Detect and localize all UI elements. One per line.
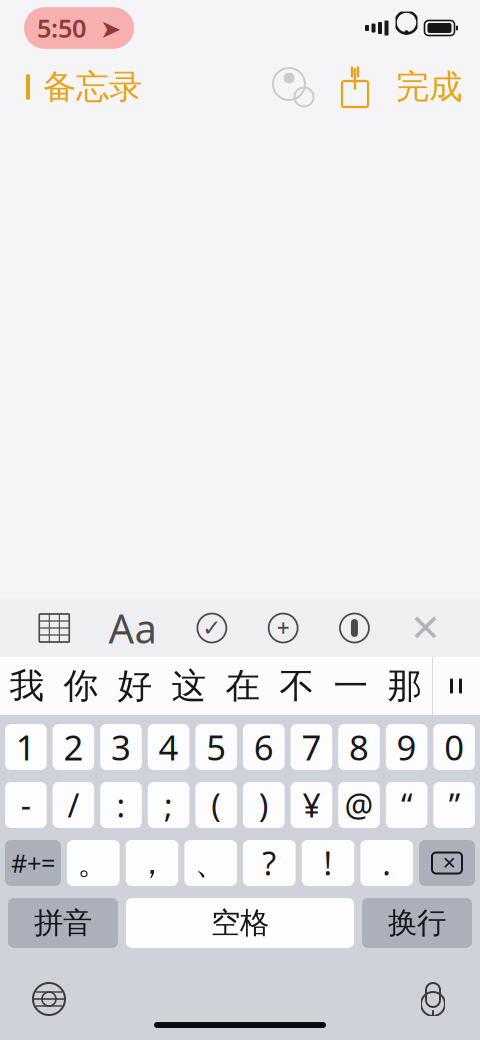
button[interactable]: 清单 bbox=[196, 612, 228, 644]
button[interactable]: 6 bbox=[243, 724, 285, 770]
staticText: 空格 bbox=[211, 905, 269, 941]
button[interactable]: “ bbox=[386, 782, 427, 828]
staticText: 拼音 bbox=[34, 905, 92, 941]
button[interactable]: . bbox=[360, 840, 413, 886]
button[interactable]: 2 bbox=[53, 724, 94, 770]
staticText: + bbox=[277, 613, 290, 643]
staticText: #+= bbox=[11, 846, 55, 880]
button[interactable]: ” bbox=[433, 782, 475, 828]
staticText: “ bbox=[401, 784, 412, 826]
staticText: 那 bbox=[387, 665, 422, 707]
staticText: ? bbox=[262, 842, 276, 884]
staticText: 4 bbox=[159, 724, 179, 770]
staticText: 我 bbox=[9, 665, 44, 707]
button[interactable]: 展开候选 bbox=[432, 657, 480, 715]
button[interactable]: / bbox=[53, 782, 94, 828]
button[interactable]: 完成 bbox=[388, 58, 462, 115]
button[interactable]: 、 bbox=[184, 840, 237, 886]
staticText: ) bbox=[259, 784, 269, 826]
staticText: ; bbox=[164, 784, 173, 826]
button[interactable]: 4 bbox=[148, 724, 189, 770]
staticText: 5:50 ➤ bbox=[37, 11, 121, 45]
staticText: ( bbox=[211, 784, 221, 826]
staticText: 9 bbox=[397, 724, 417, 770]
button[interactable]: 7 bbox=[291, 724, 332, 770]
staticText: ! bbox=[323, 842, 332, 884]
button[interactable]: 0 bbox=[433, 724, 475, 770]
button[interactable]: 这 bbox=[162, 657, 216, 715]
staticText: 这 bbox=[171, 665, 206, 707]
staticText: 6 bbox=[254, 724, 274, 770]
button[interactable]: 不 bbox=[270, 657, 324, 715]
staticText: 、 bbox=[195, 843, 227, 883]
staticText: 7 bbox=[301, 724, 321, 770]
button[interactable]: 标记 bbox=[338, 612, 370, 644]
staticText: / bbox=[67, 784, 79, 826]
button[interactable]: 那 bbox=[378, 657, 432, 715]
button[interactable]: 空格 bbox=[126, 898, 354, 948]
button[interactable]: @ bbox=[338, 782, 380, 828]
staticText: ✕ bbox=[410, 607, 441, 649]
button[interactable]: 备忘录 bbox=[18, 58, 146, 115]
staticText: 换行 bbox=[388, 905, 446, 941]
button[interactable]: ( bbox=[195, 782, 237, 828]
staticText: 一 bbox=[333, 665, 368, 707]
staticText: 3 bbox=[111, 724, 131, 770]
staticText: 不 bbox=[279, 665, 314, 707]
staticText: - bbox=[21, 784, 31, 826]
staticText: ” bbox=[449, 784, 460, 826]
button[interactable]: 换行 bbox=[362, 898, 472, 948]
staticText: @ bbox=[344, 784, 373, 826]
staticText: ✕ bbox=[442, 853, 457, 873]
staticText: 5 bbox=[206, 724, 226, 770]
button[interactable]: ) bbox=[243, 782, 285, 828]
button[interactable]: ， bbox=[126, 840, 178, 886]
button[interactable]: 删除 bbox=[419, 840, 475, 886]
button[interactable]: 语音输入 bbox=[408, 970, 458, 1028]
staticText: 2 bbox=[63, 724, 83, 770]
button[interactable]: #+= bbox=[5, 840, 61, 886]
button[interactable]: 添加 bbox=[267, 612, 299, 644]
staticText: 8 bbox=[349, 724, 369, 770]
staticText: 备忘录 bbox=[43, 66, 142, 107]
button[interactable]: 关闭键盘 bbox=[410, 607, 441, 649]
button[interactable]: 在 bbox=[216, 657, 270, 715]
button[interactable]: ; bbox=[148, 782, 189, 828]
button[interactable]: Aa bbox=[109, 601, 157, 654]
staticText: . bbox=[382, 842, 391, 884]
staticText: ， bbox=[136, 843, 168, 883]
button[interactable]: 1 bbox=[5, 724, 47, 770]
button[interactable]: 共享 bbox=[322, 61, 388, 113]
button[interactable]: 。 bbox=[67, 840, 120, 886]
button[interactable]: 3 bbox=[100, 724, 142, 770]
staticText: 0 bbox=[444, 724, 464, 770]
button[interactable]: ¥ bbox=[291, 782, 332, 828]
button[interactable]: : bbox=[100, 782, 142, 828]
staticText: 好 bbox=[117, 665, 152, 707]
staticText: 。 bbox=[77, 843, 109, 883]
button[interactable]: 拼音 bbox=[8, 898, 118, 948]
button[interactable]: 添加协作者 bbox=[266, 60, 322, 114]
button[interactable]: - bbox=[5, 782, 47, 828]
button[interactable]: ? bbox=[243, 840, 296, 886]
staticText: : bbox=[116, 784, 125, 826]
staticText: ✓ bbox=[202, 615, 221, 641]
button[interactable]: 我 bbox=[0, 657, 54, 715]
button[interactable]: ! bbox=[302, 840, 354, 886]
staticText: ¥ bbox=[302, 784, 320, 826]
button[interactable]: 表格 bbox=[39, 614, 69, 642]
button[interactable]: 你 bbox=[54, 657, 108, 715]
staticText: 完成 bbox=[396, 66, 462, 107]
staticText: 1 bbox=[16, 724, 36, 770]
button[interactable]: 8 bbox=[338, 724, 380, 770]
button[interactable]: 9 bbox=[386, 724, 427, 770]
staticText: 你 bbox=[63, 665, 98, 707]
button[interactable]: 5 bbox=[195, 724, 237, 770]
button[interactable]: 切换键盘 bbox=[22, 972, 76, 1026]
staticText: 在 bbox=[225, 665, 260, 707]
staticText: Aa bbox=[109, 601, 157, 654]
button[interactable]: 一 bbox=[324, 657, 378, 715]
button[interactable]: 好 bbox=[108, 657, 162, 715]
